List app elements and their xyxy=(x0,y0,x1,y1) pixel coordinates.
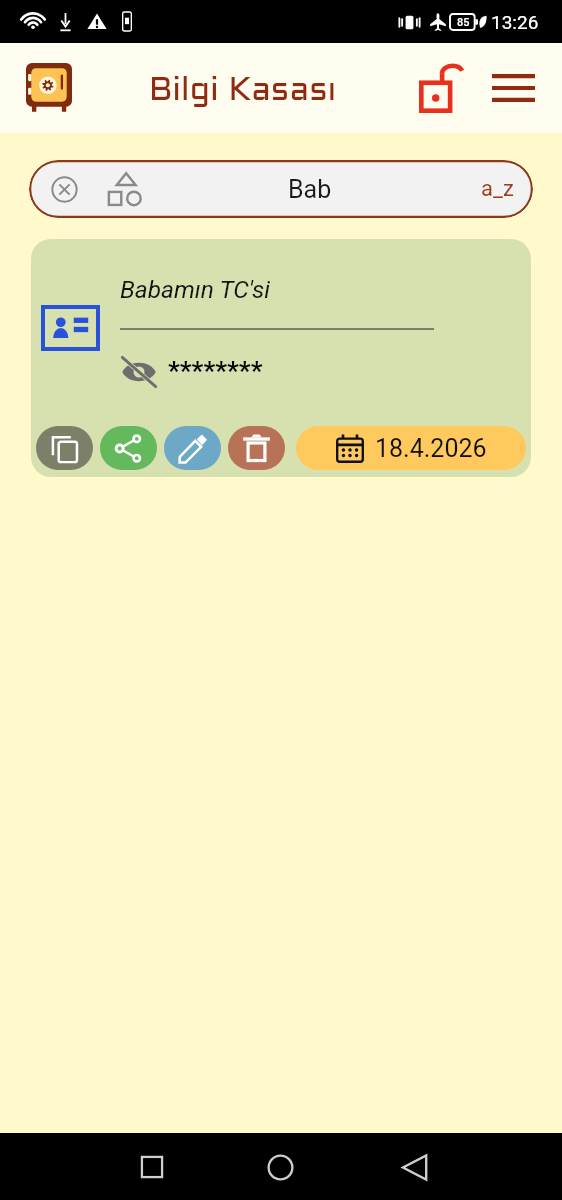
button[interactable]: Unlock xyxy=(415,62,467,114)
staticText: Bab xyxy=(288,175,332,204)
staticText: Babamın TC'si xyxy=(120,275,270,304)
staticText: 13:26 xyxy=(491,11,539,33)
button[interactable]: Bab xyxy=(29,160,533,218)
button[interactable]: Menu xyxy=(487,62,539,114)
button[interactable]: 18.4.2026 xyxy=(296,426,526,470)
button[interactable]: Recent apps xyxy=(128,1143,176,1191)
button[interactable]: Edit xyxy=(164,426,221,470)
staticText: 85 xyxy=(457,16,470,29)
button[interactable]: Home xyxy=(256,1143,304,1191)
button[interactable]: Delete xyxy=(228,426,285,470)
staticText: ******** xyxy=(168,356,263,386)
button[interactable]: Babamın TC'si xyxy=(31,239,531,477)
button[interactable]: Share xyxy=(100,426,157,470)
button[interactable]: Safe xyxy=(21,59,77,115)
staticText: 18.4.2026 xyxy=(375,434,487,463)
staticText: a_z xyxy=(481,176,514,202)
button[interactable]: Copy xyxy=(36,426,93,470)
button[interactable]: Back xyxy=(391,1143,439,1191)
staticText: Bilgi Kasası xyxy=(149,76,337,107)
